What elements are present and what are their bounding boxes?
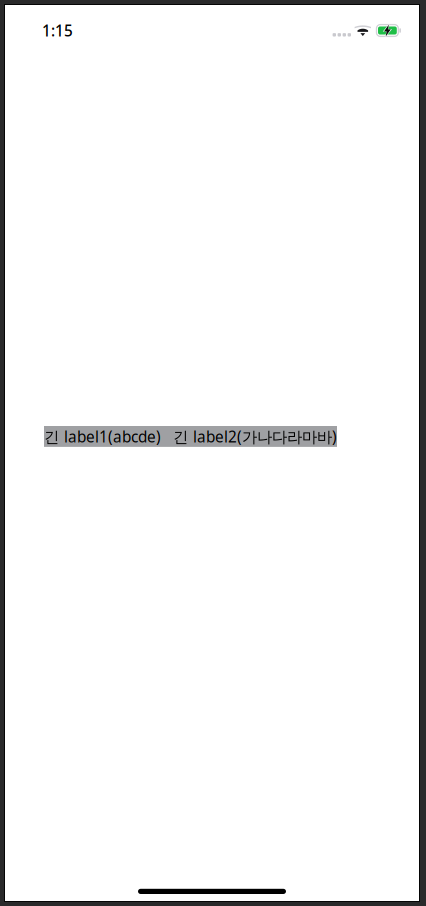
staticText: 1:15 bbox=[42, 20, 73, 41]
staticText: 긴 label1(abcde) bbox=[44, 426, 161, 447]
staticText: 긴 label2(가나다라마바) bbox=[173, 426, 337, 447]
